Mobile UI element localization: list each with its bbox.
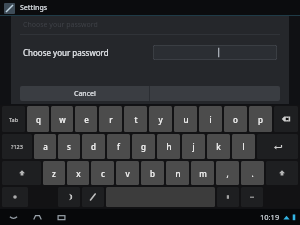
staticText: b	[150, 168, 155, 179]
button[interactable]: n	[166, 161, 189, 185]
button[interactable]: Next	[58, 187, 80, 207]
staticText: l	[242, 141, 245, 152]
button[interactable]: Emoji	[217, 187, 239, 207]
staticText: d	[91, 141, 96, 152]
staticText: Settings	[20, 3, 48, 13]
button[interactable]: Shift	[266, 161, 298, 185]
button[interactable]: y	[149, 106, 172, 132]
button[interactable]: p	[249, 106, 272, 132]
button[interactable]: Hide keyboard	[241, 187, 263, 207]
staticText: Choose your password	[23, 20, 98, 30]
staticText: u	[183, 114, 189, 125]
button[interactable]: Backspace	[274, 106, 298, 132]
button[interactable]: b	[141, 161, 164, 185]
staticText: v	[125, 168, 130, 179]
button[interactable]: z	[43, 161, 65, 185]
staticText: r	[109, 114, 113, 125]
button[interactable]: Recent apps	[54, 210, 68, 224]
staticText: Cancel	[74, 89, 96, 99]
staticText: 10:19	[260, 212, 280, 222]
button[interactable]: c	[91, 161, 114, 185]
button[interactable]: q	[27, 106, 49, 132]
button[interactable]: ?123	[2, 134, 32, 159]
staticText: z	[52, 168, 56, 179]
staticText: Choose your password	[23, 47, 109, 58]
button[interactable]: h	[157, 134, 180, 159]
button[interactable]: Shift	[2, 161, 41, 185]
button[interactable]: f	[107, 134, 130, 159]
staticText: t	[134, 114, 138, 125]
staticText: y	[158, 114, 163, 125]
staticText: p	[258, 114, 263, 125]
staticText: a	[43, 141, 48, 152]
staticText: k	[216, 141, 221, 152]
button[interactable]: o	[224, 106, 247, 132]
staticText: .	[251, 168, 254, 179]
staticText: ?123	[11, 143, 23, 150]
staticText: m	[199, 168, 207, 179]
button[interactable]: d	[82, 134, 105, 159]
button[interactable]: Cancel	[20, 86, 149, 101]
button[interactable]: Tab	[2, 106, 25, 132]
button[interactable]: v	[116, 161, 139, 185]
button[interactable]: r	[99, 106, 122, 132]
button[interactable]: i	[199, 106, 222, 132]
button[interactable]	[153, 45, 277, 60]
button[interactable]: x	[67, 161, 89, 185]
button[interactable]: e	[75, 106, 97, 132]
button[interactable]: j	[182, 134, 205, 159]
button[interactable]: Home	[30, 210, 44, 224]
button[interactable]: Back	[6, 210, 20, 224]
button[interactable]: g	[132, 134, 155, 159]
button[interactable]: l	[232, 134, 255, 159]
staticText: Tab	[9, 116, 19, 123]
button[interactable]: w	[51, 106, 73, 132]
staticText: s	[67, 141, 71, 152]
button[interactable]: m	[191, 161, 214, 185]
staticText: f	[117, 141, 120, 152]
staticText: o	[233, 114, 238, 125]
staticText: x	[76, 168, 81, 179]
button[interactable]: a	[34, 134, 56, 159]
button[interactable]: Settings	[2, 187, 28, 207]
button[interactable]: u	[174, 106, 197, 132]
staticText: ,	[226, 168, 229, 179]
staticText: i	[209, 114, 212, 125]
button[interactable]: s	[58, 134, 80, 159]
button[interactable]: Voice input	[82, 187, 104, 207]
button[interactable]: k	[207, 134, 230, 159]
button[interactable]: t	[124, 106, 147, 132]
staticText: g	[141, 141, 146, 152]
staticText: j	[192, 141, 195, 152]
button[interactable]: .	[241, 161, 264, 185]
staticText: w	[59, 114, 66, 125]
button[interactable]: ,	[216, 161, 239, 185]
button[interactable]: Enter	[257, 134, 298, 159]
staticText: n	[175, 168, 181, 179]
staticText: c	[101, 168, 105, 179]
staticText: q	[36, 114, 41, 125]
staticText: h	[166, 141, 172, 152]
staticText: e	[84, 114, 89, 125]
